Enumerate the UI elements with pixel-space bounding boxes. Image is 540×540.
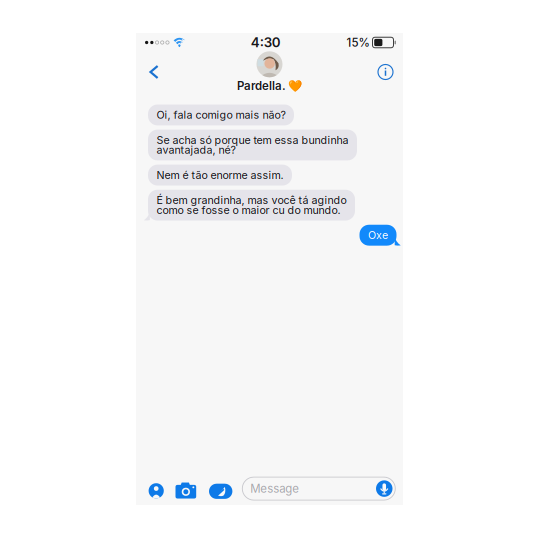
staticText: Nem é tão enorme assim. <box>156 169 283 181</box>
staticText: É bem grandinha, mas você tá agindo <box>156 194 346 207</box>
button[interactable]: Apps <box>205 479 236 504</box>
button[interactable]: Contacts <box>144 478 169 503</box>
staticText: Oi, fala comigo mais não? <box>156 108 285 121</box>
staticText: 4:30 <box>251 34 281 50</box>
staticText: Oxe <box>368 229 388 242</box>
staticText: 15% <box>346 36 369 49</box>
staticText: como se fosse o maior cu do mundo. <box>156 204 340 216</box>
staticText: Message <box>250 482 299 496</box>
button[interactable]: Details <box>366 55 403 88</box>
staticText: avantajada, né? <box>156 143 235 156</box>
button[interactable]: Message field <box>242 477 395 500</box>
staticText: Se acha só porque tem essa bundinha <box>156 134 348 146</box>
staticText: Pardella. 🧡 <box>237 79 302 93</box>
button[interactable]: Back <box>136 56 171 88</box>
button[interactable]: Camera <box>171 478 200 503</box>
